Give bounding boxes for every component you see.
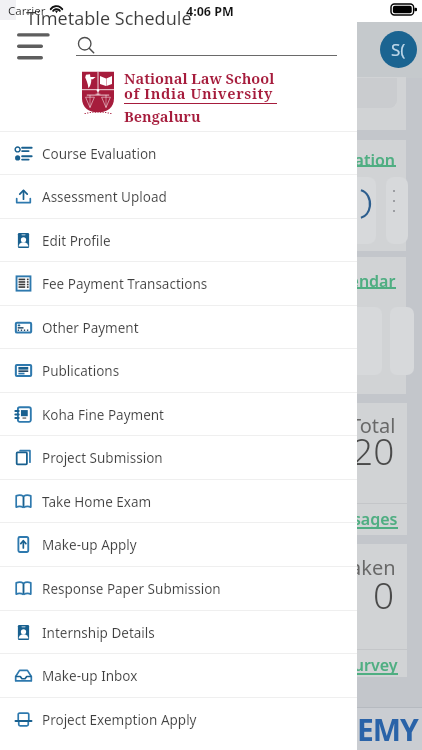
staticText: National Law School [124,68,275,88]
staticText: ication [342,149,396,171]
staticText: Survey [345,654,398,676]
staticText: S( [391,38,406,61]
button[interactable]: Publications [0,349,357,392]
staticText: 20 [352,425,395,475]
button[interactable]: Internship Details [0,611,357,654]
staticText: Internship Details [42,624,155,642]
staticText: Other Payment [42,319,139,337]
button[interactable]: Koha Fine Payment [0,393,357,436]
button[interactable]: Make-up Apply [0,523,357,566]
staticText: Koha Fine Payment [42,406,164,424]
button[interactable]: Project Submission [0,436,357,479]
button[interactable]: Fee Payment Transactions [0,262,357,305]
staticText: 0 [373,569,395,619]
staticText: Carrier [8,3,46,19]
staticText: Bengaluru [124,106,201,126]
staticText: Response Paper Submission [42,580,221,598]
staticText: Make-up Inbox [42,667,138,685]
staticText: ssages [345,508,398,530]
staticText: Course Evaluation [42,145,157,163]
button[interactable]: Make-up Inbox [0,654,357,697]
staticText: Publications [42,362,120,380]
button[interactable]: Open navigation menu [8,27,58,67]
staticText: Take Home Exam [42,493,152,511]
staticText: Project Exemption Apply [42,711,197,729]
button[interactable]: Take Home Exam [0,480,357,523]
button[interactable]: Course Evaluation [0,132,357,175]
button[interactable]: Response Paper Submission [0,567,357,610]
button[interactable]: Other Payment [0,306,357,349]
staticText: 4:06 PM [186,3,234,20]
staticText: lendar [345,270,396,292]
staticText: Timetable Schedule [26,6,192,28]
button[interactable]: Edit Profile [0,219,357,262]
staticText: Edit Profile [42,232,111,250]
button[interactable]: Assessment Upload [0,175,357,218]
staticText: Fee Payment Transactions [42,275,208,293]
button[interactable]: Project Exemption Apply [0,698,357,741]
staticText: Make-up Apply [42,536,137,554]
staticText: Total [350,412,396,439]
staticText: EMY [357,709,418,750]
button[interactable]: Profile [380,31,417,68]
staticText: Assessment Upload [42,188,167,206]
staticText: aken [350,554,396,581]
staticText: Project Submission [42,449,163,467]
staticText: of India University [124,83,274,103]
